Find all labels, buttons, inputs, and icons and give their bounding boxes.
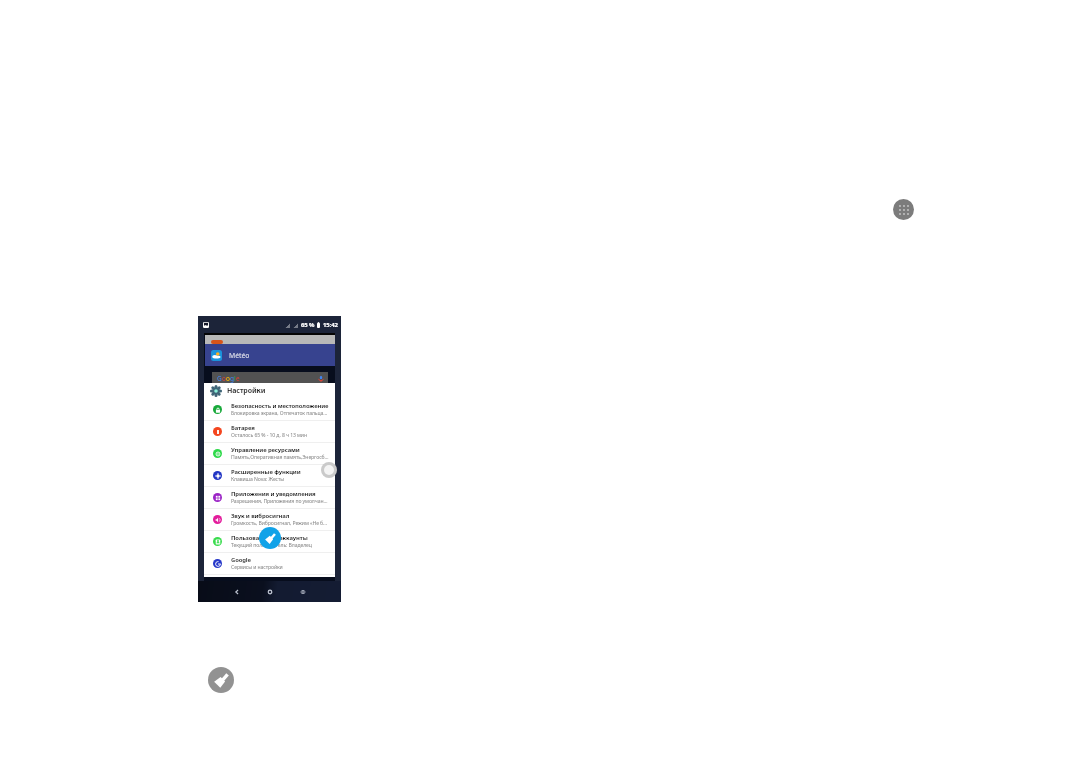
- staticText: 65 %: [301, 321, 315, 329]
- staticText: Текущий пользователь: Владелец: [231, 542, 312, 549]
- button[interactable]: Back: [226, 581, 248, 602]
- button[interactable]: Звук и вибросигнал: [204, 509, 335, 530]
- staticText: Батарея: [231, 424, 255, 432]
- button[interactable]: Батарея: [204, 421, 335, 442]
- button[interactable]: Расширенные функции: [204, 465, 335, 486]
- staticText: Блокировка экрана, Отпечаток пальца…: [231, 410, 328, 417]
- staticText: Осталось 65 % - 10 д. 8 ч 13 мин: [231, 432, 307, 439]
- staticText: Клавиша Nova: Жесты: [231, 476, 285, 483]
- button[interactable]: Управление ресурсами: [204, 443, 335, 464]
- button[interactable]: Clean: [208, 667, 234, 693]
- button[interactable]: G: [212, 372, 328, 385]
- button[interactable]: Home: [259, 581, 281, 602]
- button[interactable]: App drawer: [893, 199, 914, 220]
- button[interactable]: Google: [204, 553, 335, 574]
- staticText: Безопасность и местоположение: [231, 402, 329, 410]
- button[interactable]: Настройки: [204, 383, 335, 399]
- staticText: l: [234, 374, 236, 383]
- staticText: Настройки: [227, 386, 266, 396]
- staticText: Пользователи и аккаунты: [231, 534, 308, 542]
- staticText: Громкость, Вибросигнал, Режим «Не б…: [231, 520, 327, 527]
- staticText: Звук и вибросигнал: [231, 512, 290, 520]
- button[interactable]: Météo: [205, 344, 335, 366]
- button[interactable]: Recents: [292, 581, 314, 602]
- staticText: 15:42: [323, 321, 338, 329]
- staticText: Память,Оперативная память,Энергосб…: [231, 454, 329, 461]
- staticText: Приложения и уведомления: [231, 490, 316, 498]
- staticText: o: [226, 374, 230, 383]
- button[interactable]: Пользователи и аккаунты: [204, 531, 335, 552]
- button[interactable]: Clean memory: [259, 527, 281, 549]
- staticText: Сервисы и настройки: [231, 564, 283, 571]
- staticText: Расширенные функции: [231, 468, 301, 476]
- button[interactable]: Приложения и уведомления: [204, 487, 335, 508]
- button[interactable]: Assistive touch: [321, 462, 337, 478]
- staticText: Google: [231, 556, 251, 564]
- staticText: Разрешения, Приложения по умолчан…: [231, 498, 328, 505]
- staticText: G: [217, 374, 222, 383]
- staticText: g: [230, 374, 234, 383]
- staticText: Управление ресурсами: [231, 446, 300, 454]
- staticText: o: [222, 374, 226, 383]
- staticText: Météo: [229, 351, 250, 360]
- staticText: e: [236, 374, 240, 383]
- button[interactable]: Безопасность и местоположение: [204, 399, 335, 420]
